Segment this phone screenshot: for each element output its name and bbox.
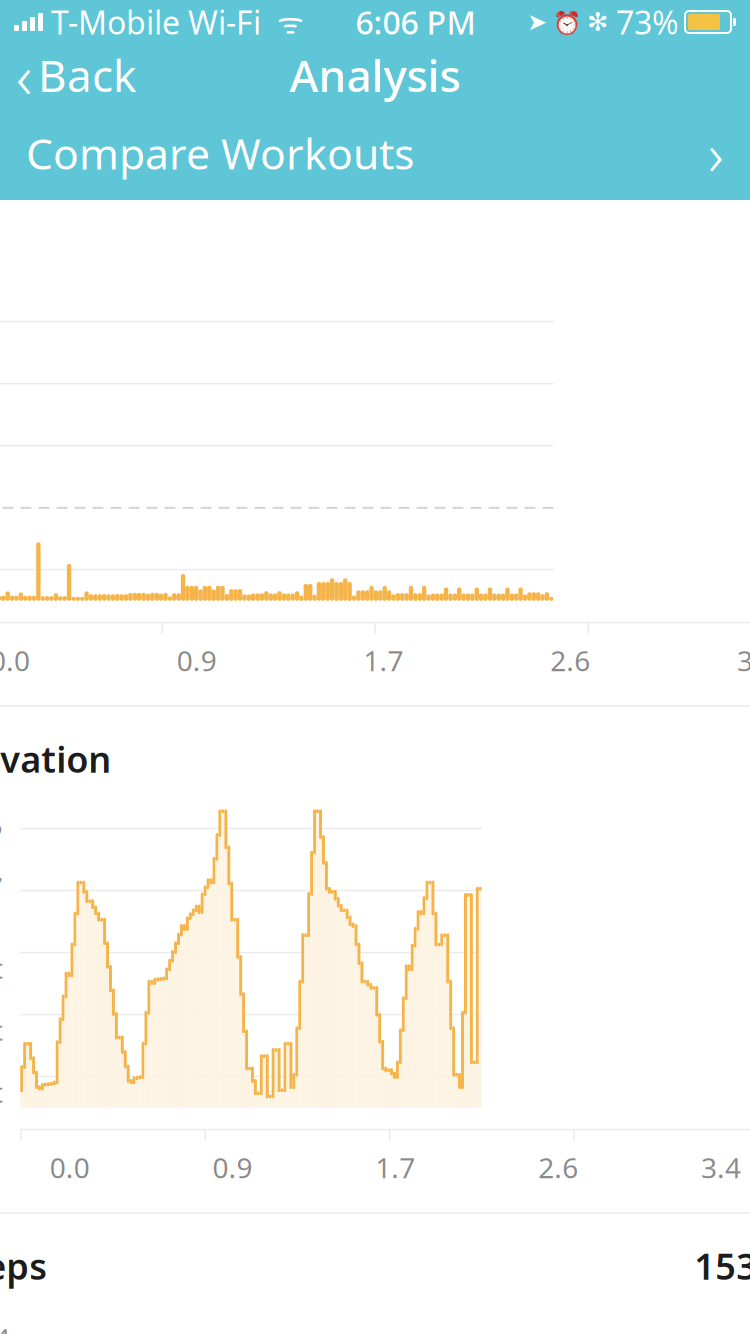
staticText: 25 ft [0, 1073, 3, 1110]
staticText: 2.6 [550, 642, 590, 679]
staticText: 3.4 [737, 642, 750, 679]
staticText: Analysis [289, 46, 460, 104]
staticText: ᯤ [261, 2, 304, 41]
staticText: T-Mobile Wi-Fi [51, 1, 261, 43]
staticText: 153 steps/min [694, 1242, 750, 1290]
staticText: 107 ft [0, 869, 3, 943]
staticText: 80 ft [0, 949, 3, 986]
button[interactable]: Compare Workouts [0, 106, 750, 200]
staticText: 174 [0, 1320, 10, 1334]
staticText: Elevation [0, 735, 111, 783]
staticText: Compare Workouts [26, 125, 414, 181]
staticText: 3.4 [701, 1149, 741, 1186]
staticText: 0.9 [212, 1149, 252, 1186]
staticText: 2.6 [538, 1149, 578, 1186]
staticText: Steps [0, 1242, 47, 1290]
staticText: Back [38, 46, 136, 104]
staticText: 0.0 [50, 1149, 90, 1186]
staticText: 53 ft [0, 1011, 3, 1048]
staticText: ➤ [527, 8, 547, 36]
staticText: 0.9 [177, 642, 217, 679]
staticText: ⏰ [547, 7, 587, 37]
staticText: › [708, 114, 724, 192]
staticText: ✻ [587, 8, 608, 36]
staticText: 1.7 [375, 1149, 415, 1186]
staticText: 135 ft [0, 807, 3, 881]
staticText: ‹ [16, 34, 32, 116]
button[interactable]: ‹ [0, 30, 152, 120]
staticText: 1.7 [363, 642, 403, 679]
staticText: 0.0 [0, 642, 30, 679]
staticText: 6:06 PM [355, 1, 475, 43]
staticText: 73% [608, 1, 679, 43]
